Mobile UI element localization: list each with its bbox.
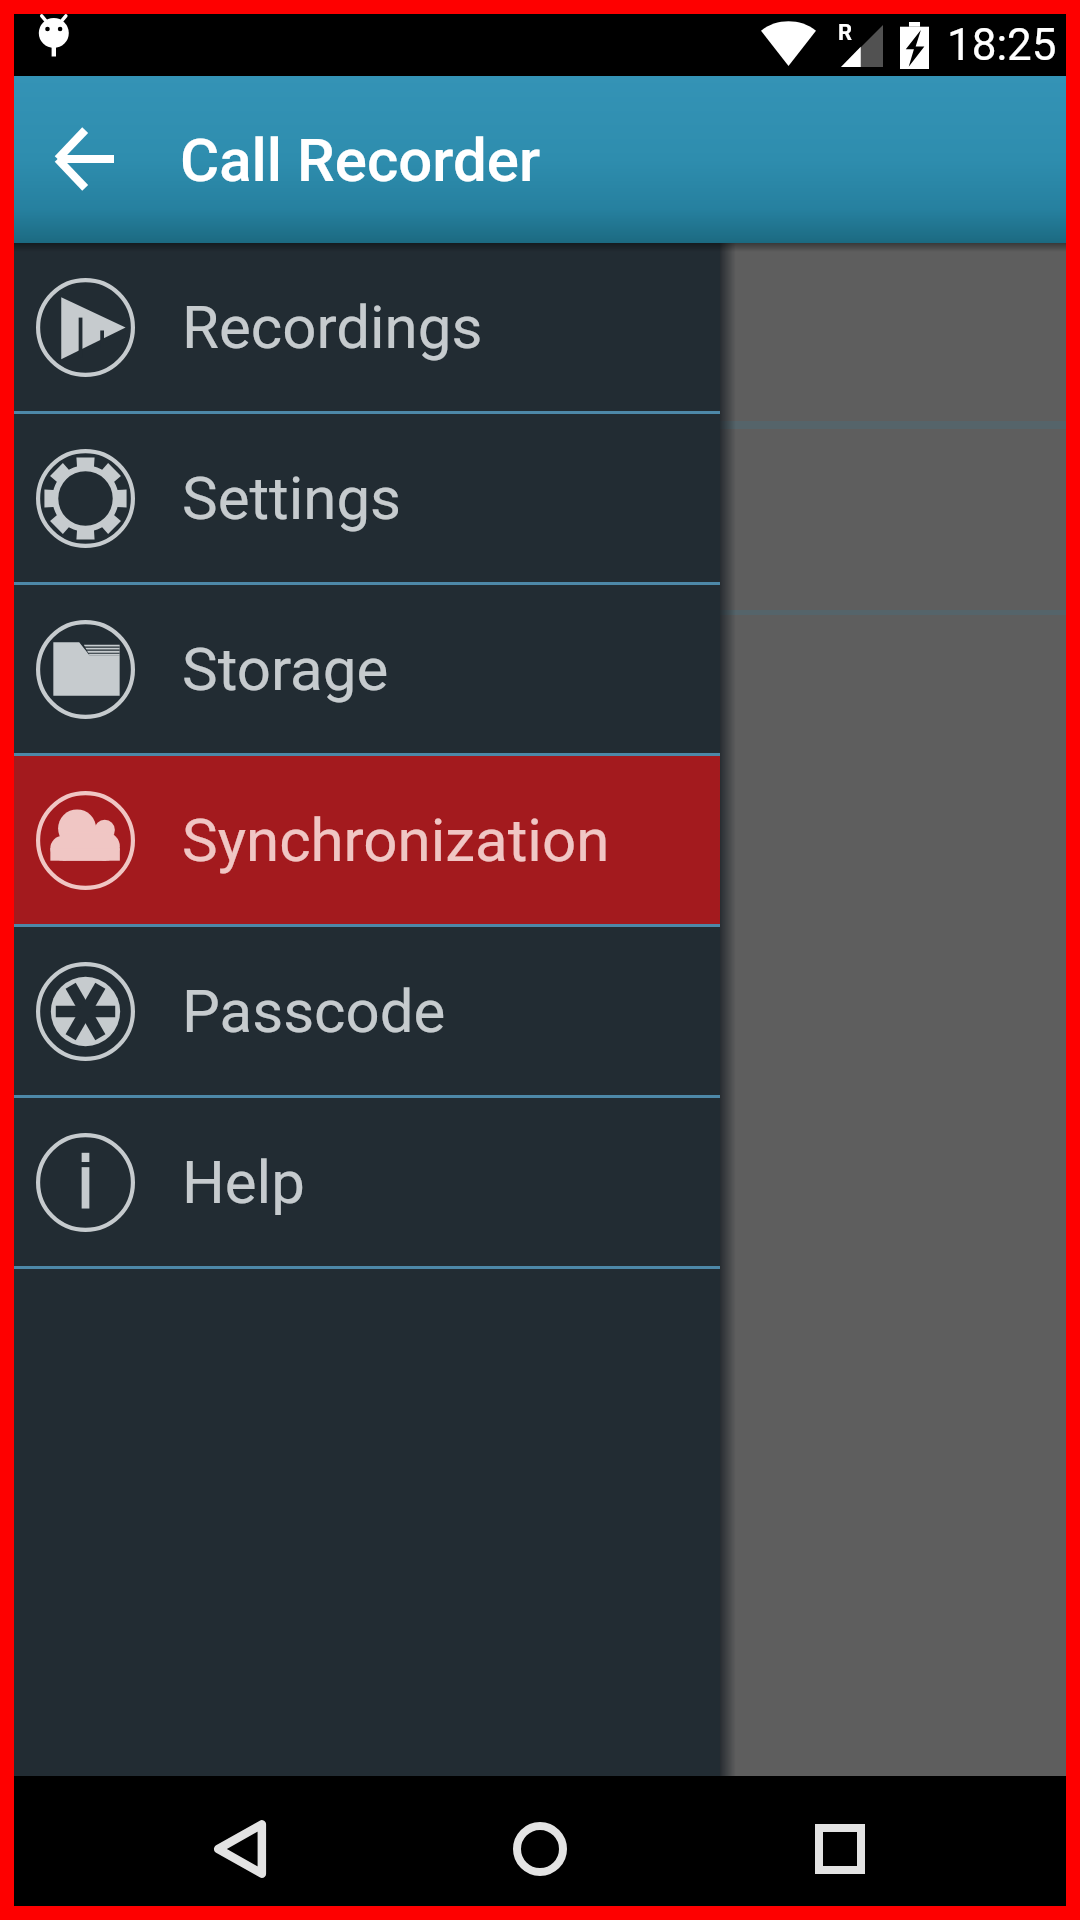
staticText: Call Recorder [180, 125, 541, 195]
staticText: Settings [182, 463, 402, 533]
button[interactable]: Passcode [14, 927, 720, 1095]
staticText: 18:25 [947, 19, 1057, 71]
staticText: Help [182, 1147, 305, 1217]
button[interactable]: Synchronization [14, 756, 720, 924]
button[interactable]: Recordings [14, 243, 720, 411]
staticText: Storage [182, 634, 389, 704]
button[interactable]: Settings [14, 414, 720, 582]
button[interactable]: Storage [14, 585, 720, 753]
button[interactable]: Back [140, 1776, 340, 1906]
staticText: Recordings [182, 292, 483, 362]
button[interactable]: Help [14, 1098, 720, 1266]
button[interactable]: Home [440, 1776, 640, 1906]
button[interactable]: Back [34, 100, 134, 220]
staticText: Synchronization [182, 805, 610, 875]
staticText: R [838, 20, 853, 46]
staticText: Passcode [182, 976, 446, 1046]
button[interactable]: Recents [740, 1776, 940, 1906]
